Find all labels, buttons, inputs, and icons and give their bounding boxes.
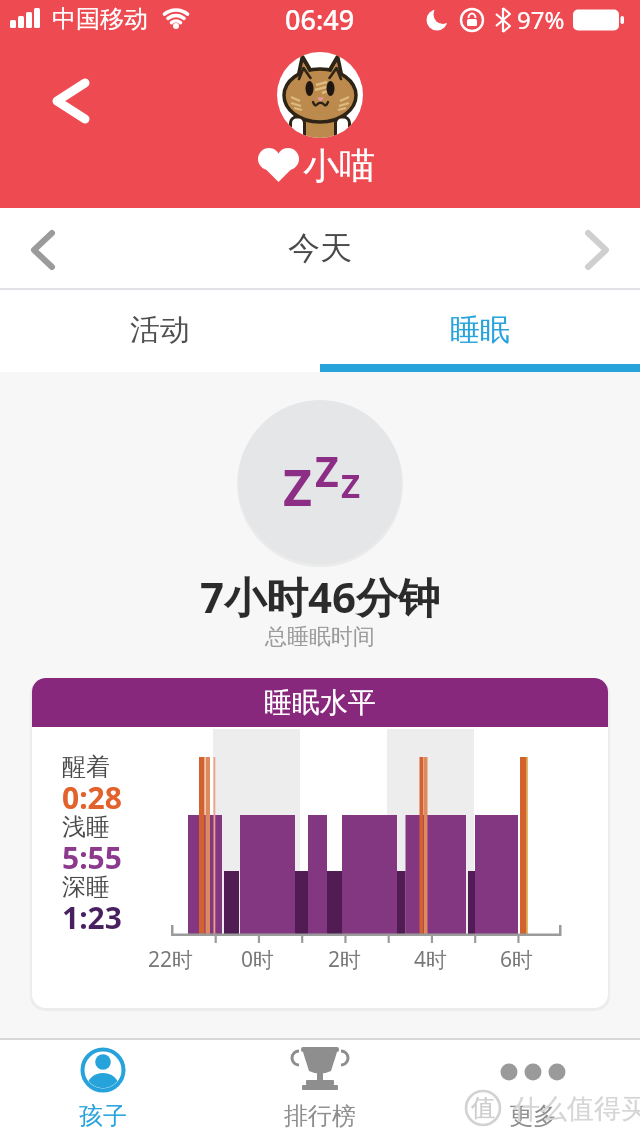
staticText: 什么值得买 (513, 1092, 640, 1126)
staticText: 睡眠水平 (264, 685, 376, 720)
staticText: 5:55 (62, 837, 122, 878)
staticText: 22时 (148, 945, 194, 974)
staticText: 今天 (288, 228, 352, 268)
staticText: 4时 (414, 945, 448, 974)
staticText: Z (341, 463, 361, 508)
staticText: 睡眠 (450, 311, 510, 349)
staticText: 2时 (328, 945, 362, 974)
staticText: 06:49 (285, 1, 355, 38)
staticText: Z (283, 453, 312, 521)
staticText: 小喵 (303, 143, 375, 188)
staticText: 值 (471, 1093, 495, 1123)
staticText: 7小时46分钟 (200, 568, 441, 625)
staticText: 0时 (241, 945, 275, 974)
staticText: 排行榜 (284, 1101, 356, 1131)
staticText: 0:28 (62, 777, 122, 818)
staticText: 醒着 (62, 752, 110, 782)
staticText: Z (315, 443, 339, 499)
staticText: 孩子 (79, 1101, 127, 1131)
staticText: 活动 (130, 311, 190, 349)
staticText: 1:23 (62, 897, 122, 938)
staticText: 97% (517, 3, 565, 36)
staticText: 深睡 (62, 872, 110, 902)
staticText: 更多 (509, 1101, 557, 1131)
staticText: 中国移动 (52, 4, 148, 34)
staticText: 浅睡 (62, 812, 110, 842)
staticText: 总睡眠时间 (265, 623, 375, 651)
staticText: 6时 (500, 945, 534, 974)
